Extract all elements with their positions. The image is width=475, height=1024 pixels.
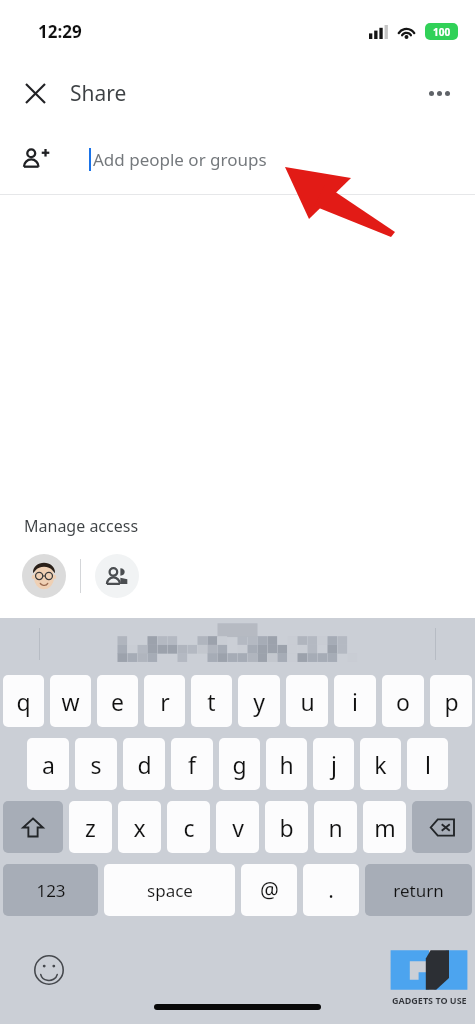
- button[interactable]: @: [241, 864, 297, 916]
- staticText: 12:29: [38, 20, 82, 43]
- button[interactable]: g: [219, 738, 260, 790]
- staticText: w: [61, 686, 80, 717]
- button[interactable]: n: [314, 801, 357, 853]
- button[interactable]: e: [97, 675, 138, 727]
- staticText: o: [396, 686, 410, 717]
- staticText: .: [328, 876, 334, 905]
- button[interactable]: Shift: [3, 801, 63, 853]
- staticText: j: [331, 749, 337, 780]
- staticText: @: [260, 876, 279, 905]
- staticText: m: [374, 812, 396, 843]
- button[interactable]: Backspace: [412, 801, 472, 853]
- staticText: s: [90, 749, 102, 780]
- button[interactable]: i: [334, 675, 376, 727]
- button[interactable]: j: [313, 738, 354, 790]
- staticText: k: [374, 749, 387, 780]
- staticText: n: [328, 812, 343, 843]
- button[interactable]: v: [216, 801, 259, 853]
- button[interactable]: .: [303, 864, 359, 916]
- button[interactable]: p: [430, 675, 472, 727]
- button[interactable]: l: [407, 738, 448, 790]
- button[interactable]: x: [118, 801, 161, 853]
- button[interactable]: o: [382, 675, 424, 727]
- button[interactable]: w: [50, 675, 91, 727]
- staticText: h: [279, 749, 294, 780]
- button[interactable]: m: [363, 801, 406, 853]
- staticText: u: [300, 686, 315, 717]
- staticText: 123: [36, 879, 66, 902]
- button[interactable]: h: [266, 738, 307, 790]
- button[interactable]: u: [286, 675, 328, 727]
- staticText: Add people or groups: [93, 148, 267, 171]
- staticText: x: [133, 812, 146, 843]
- staticText: 100: [433, 25, 451, 39]
- staticText: f: [188, 749, 196, 780]
- staticText: i: [352, 686, 358, 717]
- staticText: b: [279, 812, 294, 843]
- button[interactable]: t: [191, 675, 232, 727]
- staticText: z: [85, 812, 96, 843]
- staticText: v: [232, 812, 244, 843]
- staticText: Manage access: [24, 515, 139, 537]
- button[interactable]: z: [69, 801, 112, 853]
- button[interactable]: b: [265, 801, 308, 853]
- button[interactable]: Close: [13, 71, 57, 115]
- button[interactable]: 123: [3, 864, 98, 916]
- button[interactable]: Your account: [22, 554, 66, 598]
- staticText: r: [160, 686, 170, 717]
- staticText: a: [42, 749, 55, 780]
- button[interactable]: More options: [417, 71, 461, 115]
- button[interactable]: a: [27, 738, 69, 790]
- button[interactable]: f: [171, 738, 213, 790]
- button[interactable]: return: [365, 864, 472, 916]
- staticText: space: [147, 879, 193, 902]
- button[interactable]: d: [123, 738, 165, 790]
- button[interactable]: q: [3, 675, 44, 727]
- staticText: e: [111, 686, 124, 717]
- button[interactable]: Emoji keyboard: [33, 954, 65, 986]
- button[interactable]: r: [144, 675, 185, 727]
- button[interactable]: space: [104, 864, 235, 916]
- button[interactable]: y: [238, 675, 280, 727]
- button[interactable]: c: [167, 801, 210, 853]
- staticText: GADGETS TO USE: [392, 994, 467, 1006]
- staticText: Share: [70, 79, 127, 108]
- staticText: c: [183, 812, 195, 843]
- button[interactable]: k: [360, 738, 401, 790]
- staticText: g: [232, 749, 247, 780]
- staticText: d: [137, 749, 152, 780]
- button[interactable]: Add people or groups: [0, 124, 475, 194]
- button[interactable]: s: [75, 738, 117, 790]
- button[interactable]: Shared with group: [95, 554, 139, 598]
- staticText: q: [16, 686, 31, 717]
- staticText: return: [393, 879, 444, 902]
- staticText: p: [444, 686, 459, 717]
- staticText: y: [253, 686, 265, 717]
- staticText: t: [207, 686, 216, 717]
- staticText: l: [425, 749, 431, 780]
